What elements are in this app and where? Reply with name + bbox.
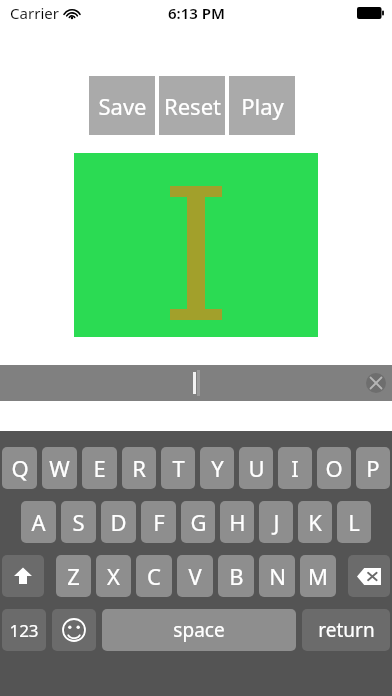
staticText: Y — [211, 453, 224, 483]
button[interactable] — [74, 153, 318, 337]
staticText: return — [318, 617, 375, 643]
button[interactable]: M — [300, 555, 336, 597]
staticText: G — [190, 507, 207, 537]
staticText: L — [348, 507, 360, 537]
button[interactable]: N — [259, 555, 295, 597]
staticText: O — [325, 453, 343, 483]
staticText: S — [72, 507, 85, 537]
button[interactable]: Save — [89, 76, 155, 135]
button[interactable]: I — [278, 447, 312, 489]
button[interactable]: Delete — [348, 555, 390, 597]
button[interactable]: Play — [229, 76, 295, 135]
button[interactable]: W — [42, 447, 77, 489]
button[interactable]: U — [239, 447, 273, 489]
button[interactable]: Emoji keyboard — [52, 609, 96, 651]
staticText: V — [188, 561, 202, 591]
button[interactable]: Clear text — [0, 365, 392, 401]
button[interactable]: Z — [56, 555, 91, 597]
button[interactable]: T — [161, 447, 195, 489]
staticText: Z — [67, 561, 80, 591]
button[interactable]: Q — [2, 447, 37, 489]
button[interactable]: Reset — [159, 76, 225, 135]
button[interactable]: space — [102, 609, 296, 651]
button[interactable]: F — [141, 501, 176, 543]
staticText: K — [308, 507, 322, 537]
button[interactable]: D — [101, 501, 136, 543]
button[interactable]: V — [177, 555, 213, 597]
staticText: F — [153, 507, 165, 537]
button[interactable]: O — [317, 447, 351, 489]
button[interactable]: G — [181, 501, 215, 543]
staticText: E — [93, 453, 106, 483]
staticText: D — [110, 507, 127, 537]
button[interactable]: B — [218, 555, 254, 597]
staticText: space — [173, 617, 225, 643]
staticText: C — [147, 561, 161, 591]
button[interactable]: Y — [200, 447, 234, 489]
button[interactable]: return — [302, 609, 390, 651]
staticText: 6:13 PM — [168, 3, 225, 23]
staticText: W — [49, 453, 70, 483]
staticText: B — [229, 561, 244, 591]
staticText: I — [291, 453, 299, 483]
button[interactable]: Clear text — [366, 373, 386, 393]
staticText: Reset — [164, 91, 221, 121]
staticText: J — [273, 507, 280, 537]
button[interactable]: Shift — [2, 555, 44, 597]
staticText: M — [308, 561, 328, 591]
button[interactable]: H — [220, 501, 254, 543]
staticText: N — [269, 561, 286, 591]
button[interactable]: J — [259, 501, 293, 543]
staticText: H — [229, 507, 246, 537]
button[interactable]: 123 — [2, 609, 46, 651]
staticText: Play — [241, 91, 284, 121]
button[interactable]: E — [82, 447, 117, 489]
button[interactable]: R — [122, 447, 156, 489]
staticText: U — [248, 453, 265, 483]
staticText: A — [31, 507, 46, 537]
staticText: T — [172, 453, 185, 483]
staticText: Q — [11, 453, 29, 483]
button[interactable]: A — [21, 501, 56, 543]
button[interactable]: P — [356, 447, 390, 489]
button[interactable]: S — [61, 501, 96, 543]
staticText: X — [107, 561, 120, 591]
staticText: R — [132, 453, 146, 483]
staticText: 123 — [9, 619, 39, 642]
staticText: Carrier — [10, 3, 59, 23]
staticText: Save — [98, 91, 147, 121]
button[interactable]: X — [96, 555, 131, 597]
button[interactable]: K — [298, 501, 332, 543]
button[interactable]: L — [337, 501, 371, 543]
button[interactable]: C — [136, 555, 172, 597]
staticText: P — [366, 453, 380, 483]
